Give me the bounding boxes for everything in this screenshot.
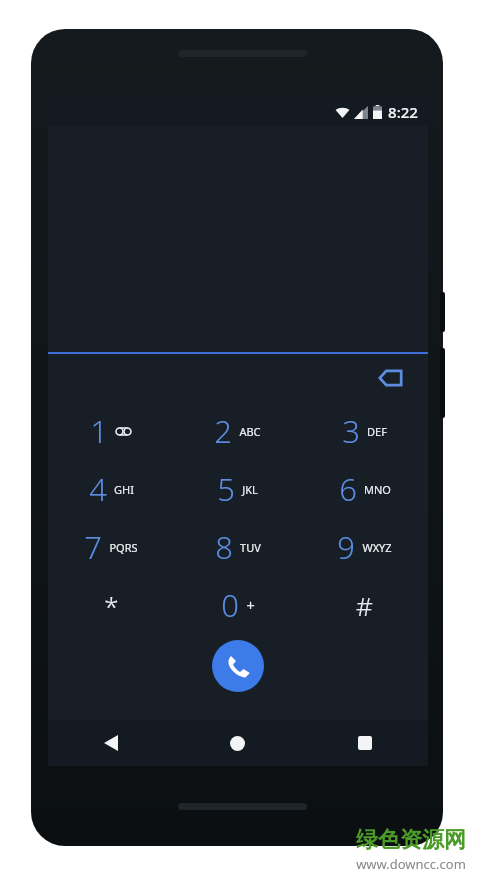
button[interactable]: 0	[174, 576, 301, 634]
staticText: 8	[215, 526, 233, 568]
button[interactable]: Backspace	[370, 358, 410, 398]
button[interactable]: *	[48, 576, 174, 634]
staticText: 4	[89, 468, 107, 510]
staticText: +	[246, 595, 255, 615]
button[interactable]: 6	[301, 460, 428, 518]
staticText: GHI	[114, 482, 134, 497]
button[interactable]: 9	[301, 518, 428, 576]
button[interactable]: 4	[48, 460, 174, 518]
button[interactable]: #	[301, 576, 428, 634]
button[interactable]: Call	[212, 640, 264, 692]
staticText: 6	[339, 468, 357, 510]
staticText: DEF	[367, 424, 387, 439]
button[interactable]: 3	[301, 402, 428, 460]
staticText: 绿色资源网	[356, 826, 466, 854]
staticText: JKL	[242, 482, 258, 497]
staticText: www.downcc.com	[356, 855, 466, 873]
button[interactable]: 5	[174, 460, 301, 518]
button[interactable]: Back	[48, 720, 174, 766]
staticText: WXYZ	[362, 540, 392, 555]
staticText: 0	[221, 584, 239, 626]
staticText: *	[104, 588, 119, 623]
staticText: 2	[214, 410, 232, 452]
staticText: 7	[84, 526, 102, 568]
staticText: #	[356, 588, 373, 623]
staticText: MNO	[364, 482, 391, 497]
staticText: 1	[90, 410, 108, 452]
staticText: TUV	[240, 540, 261, 555]
staticText: 9	[337, 526, 355, 568]
staticText: 5	[217, 468, 235, 510]
button[interactable]: 8	[174, 518, 301, 576]
staticText: 8:22	[388, 102, 418, 122]
button[interactable]: 1	[48, 402, 174, 460]
staticText: ABC	[239, 424, 261, 439]
button[interactable]: 7	[48, 518, 174, 576]
button[interactable]: Recent apps	[301, 720, 428, 766]
button[interactable]: Home	[174, 720, 301, 766]
staticText: 3	[342, 410, 360, 452]
button[interactable]: 2	[174, 402, 301, 460]
staticText: PQRS	[109, 540, 138, 555]
